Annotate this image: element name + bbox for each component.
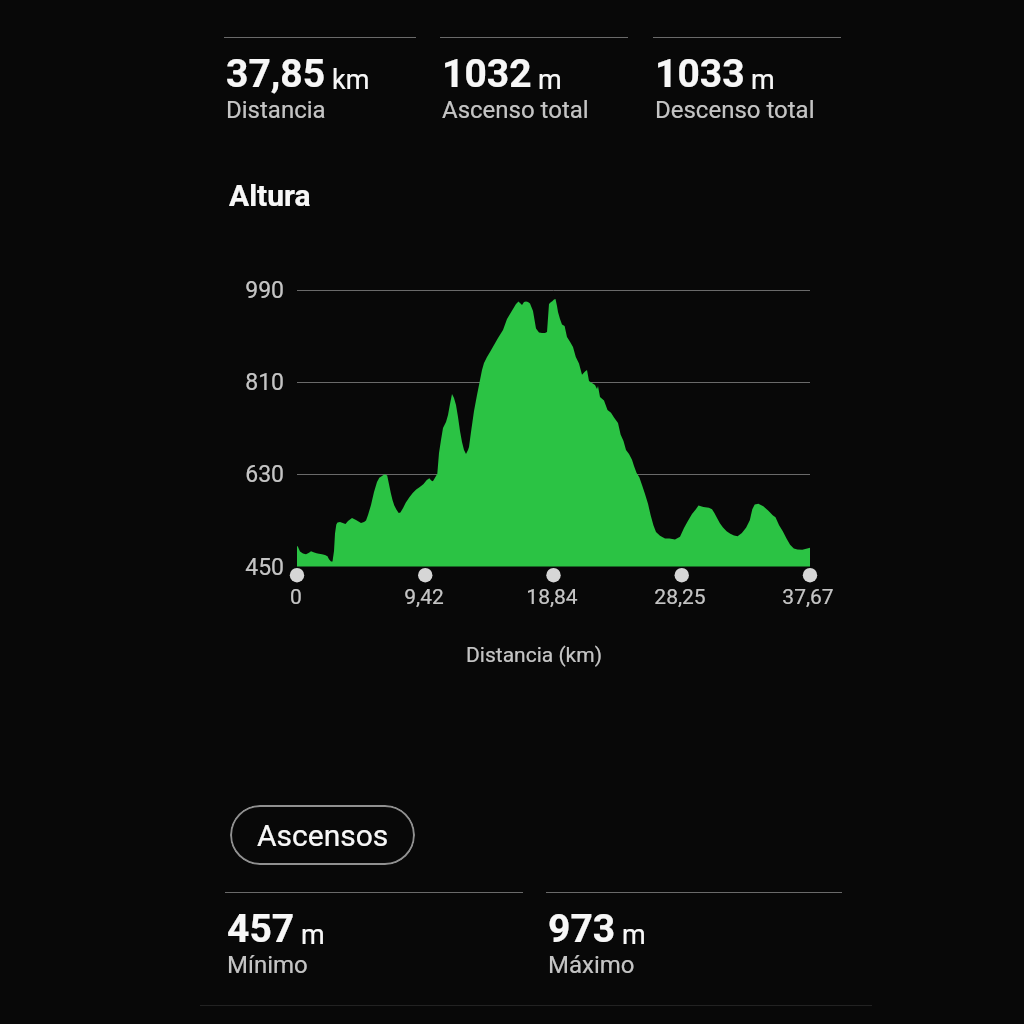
staticText: Ascenso total [442, 96, 589, 124]
staticText: m [301, 919, 325, 951]
button[interactable]: Ascensos [230, 805, 415, 865]
staticText: Distancia (km) [414, 643, 654, 668]
staticText: Mínimo [227, 951, 308, 979]
staticText: Máximo [548, 951, 635, 979]
staticText: 630 [180, 461, 284, 488]
staticText: 810 [180, 369, 284, 396]
staticText: 37,85 [226, 51, 326, 97]
button[interactable]: 457 [225, 892, 523, 967]
staticText: km [332, 64, 370, 96]
staticText: 457 [227, 906, 295, 952]
button[interactable]: 37,85 [224, 37, 416, 112]
staticText: Altura [229, 178, 311, 213]
staticText: m [622, 919, 646, 951]
staticText: 973 [548, 906, 616, 952]
staticText: 28,25 [620, 585, 740, 610]
staticText: 0 [236, 585, 356, 610]
staticText: 37,67 [748, 585, 868, 610]
staticText: 9,42 [364, 585, 484, 610]
staticText: m [751, 64, 775, 96]
staticText: Distancia [226, 96, 326, 124]
button[interactable]: 973 [546, 892, 842, 967]
button[interactable]: 1033 [653, 37, 841, 112]
staticText: 1033 [655, 51, 745, 97]
staticText: 1032 [442, 51, 532, 97]
staticText: 450 [180, 554, 284, 581]
staticText: 18,84 [492, 585, 612, 610]
staticText: 990 [180, 277, 284, 304]
staticText: m [538, 64, 562, 96]
staticText: Descenso total [655, 96, 815, 124]
button[interactable]: 1032 [440, 37, 628, 112]
button[interactable]: Elevation profile chart [297, 291, 810, 567]
staticText: Ascensos [257, 818, 389, 853]
